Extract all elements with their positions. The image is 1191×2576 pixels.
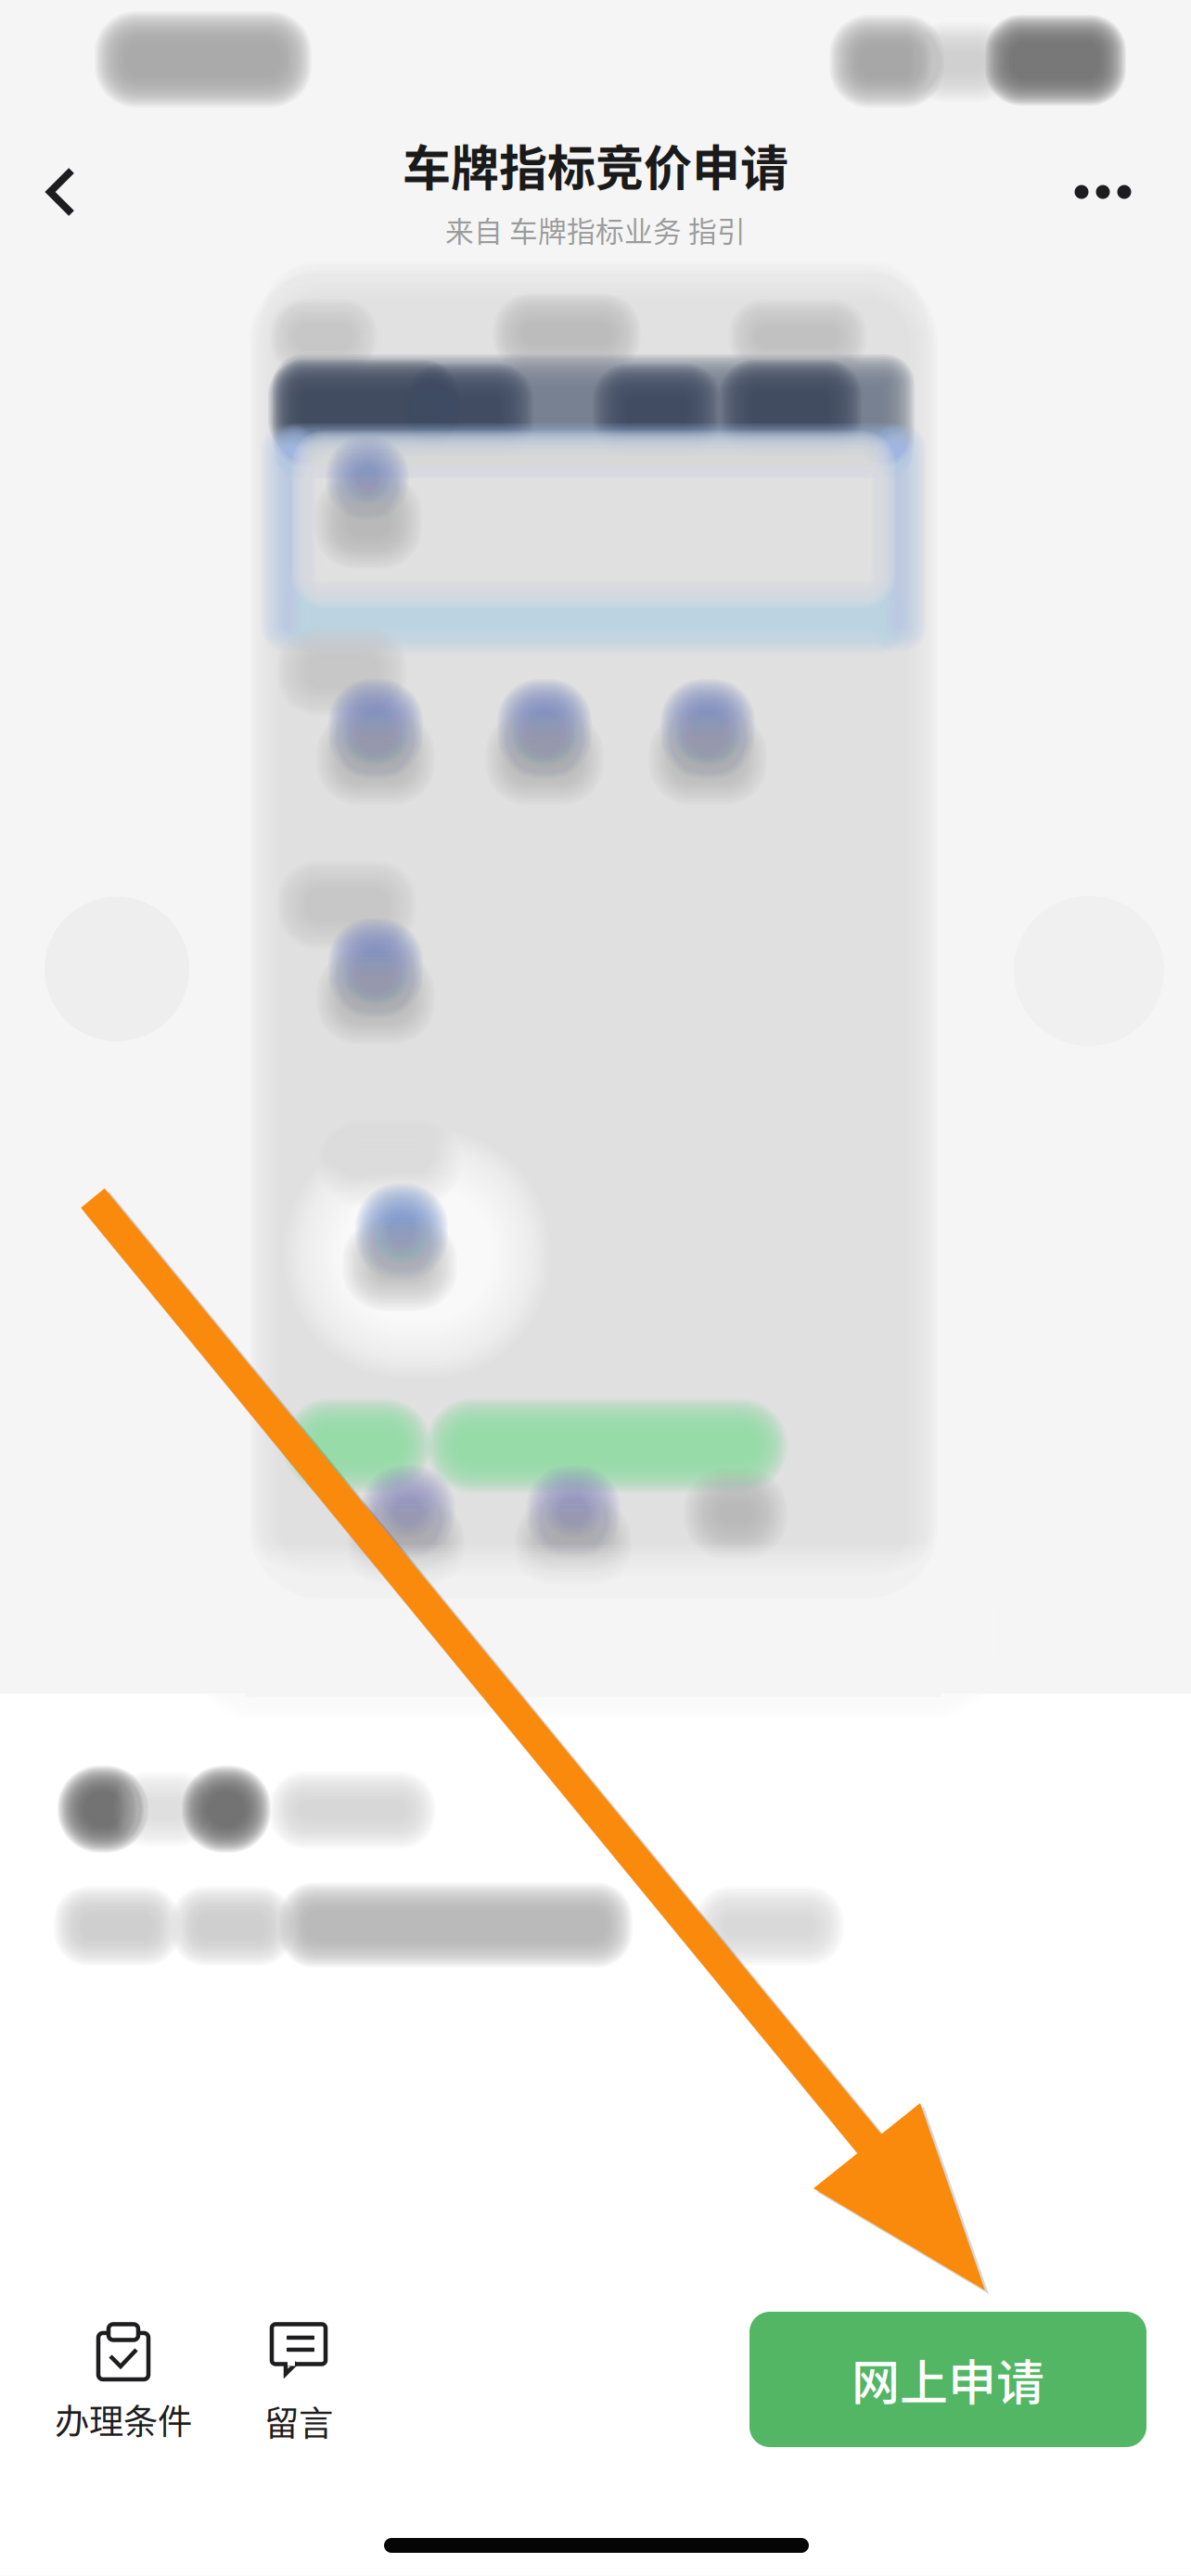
staticText: 办理条件 (55, 2394, 192, 2444)
staticText: 留言 (264, 2396, 333, 2446)
button[interactable]: 办理条件 (31, 2297, 216, 2469)
button[interactable]: Back (6, 136, 117, 248)
button[interactable]: 网上申请 (749, 2312, 1146, 2447)
staticText: 网上申请 (852, 2345, 1044, 2414)
button[interactable]: More options (1038, 141, 1168, 243)
staticText: 来自 车牌指标业务 指引 (445, 209, 746, 250)
button[interactable]: 留言 (215, 2299, 382, 2471)
staticText: 车牌指标竞价申请 (403, 130, 788, 200)
